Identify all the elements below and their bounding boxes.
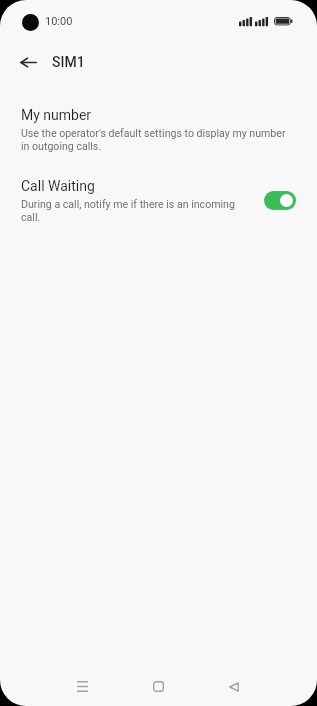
staticText: Call Waiting (21, 178, 95, 194)
button[interactable]: Call waiting (264, 191, 296, 210)
staticText: Use the operator's default settings to d… (21, 127, 294, 153)
button[interactable]: My number (0, 97, 317, 163)
button[interactable]: Back (213, 666, 254, 706)
button[interactable]: Navigate up (9, 43, 47, 81)
staticText: During a call, notify me if there is an … (21, 198, 253, 224)
button[interactable]: Home (138, 666, 179, 706)
button[interactable]: Call Waiting (0, 168, 317, 234)
staticText: My number (21, 107, 92, 123)
staticText: 10:00 (45, 15, 73, 28)
button[interactable]: Recent apps (62, 666, 103, 706)
staticText: SIM1 (52, 54, 85, 70)
